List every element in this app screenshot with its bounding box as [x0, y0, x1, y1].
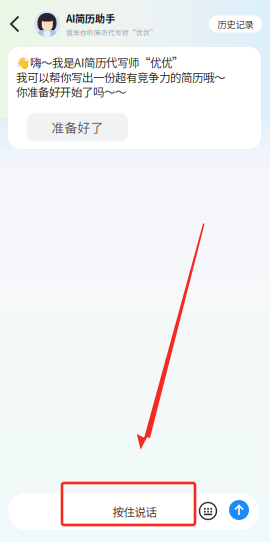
staticText: 我可以帮你写出一份超有竞争力的简历哦～	[16, 69, 225, 85]
button[interactable]: 按住说话	[68, 493, 201, 530]
staticText: 我是你的简历代写师“优优”	[66, 27, 157, 37]
staticText: 👋嗨～我是AI简历代写师“优优”	[16, 54, 183, 71]
button[interactable]: Send	[227, 498, 251, 522]
button[interactable]: 准备好了	[27, 113, 128, 142]
staticText: AI简历助手	[66, 11, 115, 25]
staticText: 准备好了	[51, 118, 103, 136]
staticText: 你准备好开始了吗～～	[16, 83, 126, 100]
staticText: 按住说话	[112, 503, 156, 520]
button[interactable]: Keyboard	[197, 500, 219, 522]
button[interactable]: 历史记录	[209, 15, 262, 32]
staticText: 历史记录	[217, 17, 253, 31]
button[interactable]: Back	[2, 9, 28, 39]
